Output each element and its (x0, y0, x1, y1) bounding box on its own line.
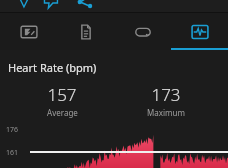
staticText: 173 (151, 83, 181, 106)
staticText: Average (47, 107, 78, 118)
staticText: 161 (6, 148, 19, 158)
button[interactable]: Heart rate (171, 13, 228, 50)
staticText: 176 (6, 125, 19, 135)
button[interactable]: Laps (114, 13, 171, 50)
staticText: Maximum (147, 107, 185, 118)
staticText: 157 (47, 83, 77, 106)
staticText: Heart Rate (bpm) (8, 60, 97, 75)
button[interactable]: Notes (57, 13, 114, 50)
button[interactable]: Photos (0, 13, 57, 50)
